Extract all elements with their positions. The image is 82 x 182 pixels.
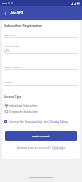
- button[interactable]: Click here: [52, 146, 66, 150]
- button[interactable]: Individual Subscriber: [4, 103, 38, 108]
- staticText: Join NPS: [10, 11, 24, 15]
- staticText: Create Account: [32, 135, 50, 138]
- button[interactable]: I accept the: [4, 120, 68, 123]
- staticText: Full Name: [4, 34, 16, 37]
- button[interactable]: Corporate Subscriber: [4, 109, 39, 114]
- staticText: I accept the: [9, 120, 25, 123]
- staticText: +91: [4, 49, 9, 52]
- button[interactable]: Back: [2, 10, 8, 16]
- button[interactable]: Create Account: [5, 131, 77, 141]
- staticText: Mobile Number: [4, 66, 22, 69]
- staticText: Already have an account?: [17, 146, 52, 150]
- staticText: Subscriber Registration: [4, 24, 43, 28]
- staticText: 4:13: [2, 2, 7, 5]
- staticText: Corporate Subscriber: [9, 110, 39, 114]
- staticText: Click here: [52, 146, 66, 150]
- staticText: Account Type: [4, 95, 22, 98]
- staticText: Privacy Policy: [50, 120, 68, 123]
- staticText: Individual Subscriber: [9, 104, 38, 108]
- staticText: Country Code: [4, 45, 20, 48]
- staticText: Terms of Use: [25, 120, 43, 123]
- staticText: and: [43, 120, 50, 123]
- staticText: Email ID: [4, 81, 14, 84]
